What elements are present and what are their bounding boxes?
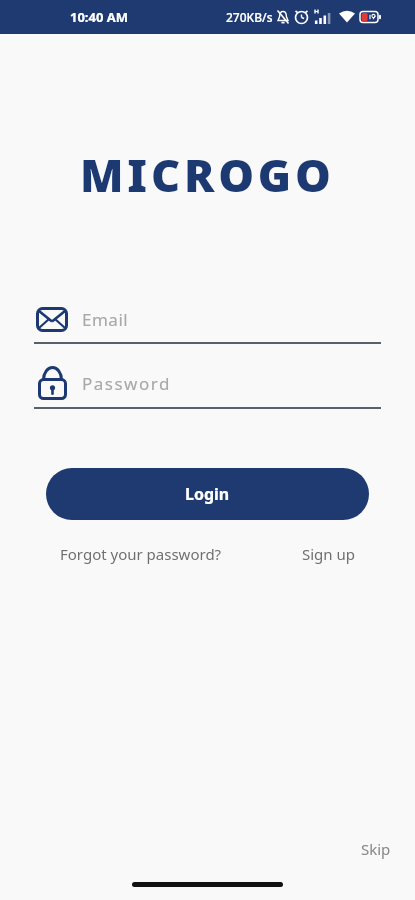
staticText: Password bbox=[82, 372, 171, 395]
button[interactable]: Forgot your password? bbox=[60, 544, 222, 564]
staticText: Skip bbox=[361, 839, 391, 859]
button[interactable]: Password bbox=[34, 366, 381, 409]
button[interactable]: Sign up bbox=[302, 544, 355, 564]
button[interactable]: Email bbox=[34, 307, 381, 344]
staticText: MICROGO bbox=[80, 144, 335, 205]
staticText: Email bbox=[82, 308, 129, 331]
staticText: 10:40 AM bbox=[70, 8, 129, 26]
staticText: 270KB/s bbox=[226, 9, 273, 25]
staticText: Login bbox=[185, 483, 230, 505]
button[interactable]: Login bbox=[46, 468, 369, 520]
button[interactable]: Skip bbox=[361, 839, 391, 859]
